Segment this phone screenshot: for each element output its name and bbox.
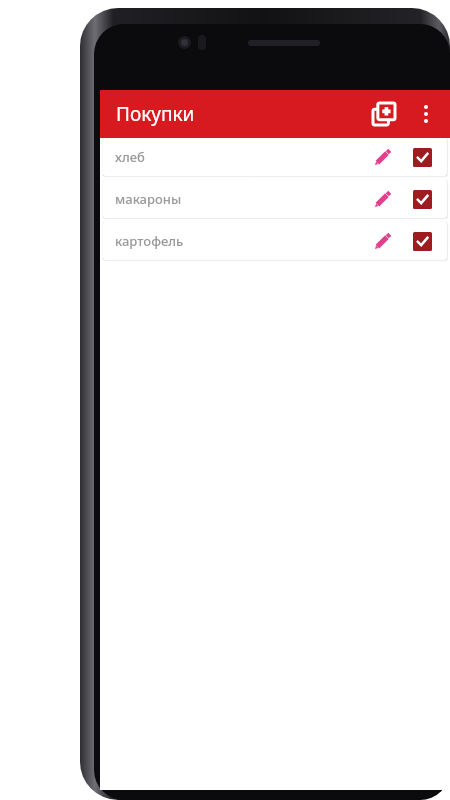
button[interactable]: картофель <box>103 222 447 260</box>
button[interactable]: Add item <box>362 92 406 136</box>
staticText: макароны <box>115 190 182 208</box>
button[interactable]: макароны <box>103 180 447 218</box>
button[interactable]: Edit макароны <box>367 184 397 214</box>
button[interactable]: Mark хлеб as bought <box>407 142 437 172</box>
button[interactable]: Edit картофель <box>367 226 397 256</box>
button[interactable]: хлеб <box>103 138 447 176</box>
button[interactable]: Mark картофель as bought <box>407 226 437 256</box>
button[interactable]: Edit хлеб <box>367 142 397 172</box>
button[interactable]: More options <box>406 94 446 134</box>
staticText: Покупки <box>116 101 195 127</box>
staticText: картофель <box>115 232 184 250</box>
staticText: хлеб <box>115 148 145 166</box>
button[interactable]: Mark макароны as bought <box>407 184 437 214</box>
